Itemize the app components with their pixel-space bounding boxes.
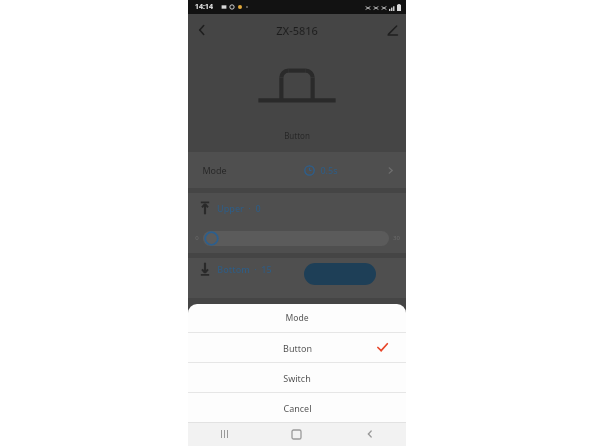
staticText: · bbox=[254, 263, 257, 275]
button[interactable]: Switch bbox=[188, 363, 406, 392]
button[interactable]: Back bbox=[333, 422, 406, 446]
staticText: 0.5s bbox=[320, 164, 338, 176]
staticText: Cancel bbox=[283, 402, 312, 414]
staticText: Upper bbox=[217, 202, 244, 214]
staticText: · bbox=[248, 202, 251, 214]
button[interactable]: Mode bbox=[188, 152, 406, 188]
staticText: 0 bbox=[195, 234, 199, 242]
staticText: 15 bbox=[261, 263, 272, 275]
button[interactable]: Home bbox=[260, 422, 333, 446]
button[interactable]: Back bbox=[188, 16, 216, 44]
button[interactable] bbox=[304, 263, 376, 285]
staticText: 0 bbox=[255, 202, 261, 214]
staticText: Mode bbox=[202, 164, 227, 176]
staticText: Mode bbox=[285, 312, 309, 324]
staticText: ZX-5816 bbox=[276, 23, 318, 38]
staticText: Bottom bbox=[217, 263, 250, 275]
staticText: 14:14 bbox=[195, 2, 213, 12]
staticText: Button bbox=[284, 130, 310, 141]
button[interactable]: Recents bbox=[188, 422, 260, 446]
button[interactable]: Button bbox=[188, 333, 406, 362]
button[interactable]: Edit bbox=[378, 16, 406, 44]
staticText: Button bbox=[283, 342, 312, 354]
button[interactable] bbox=[203, 230, 389, 246]
staticText: Switch bbox=[283, 372, 311, 384]
button[interactable]: Cancel bbox=[188, 393, 406, 422]
staticText: 30 bbox=[393, 234, 400, 242]
